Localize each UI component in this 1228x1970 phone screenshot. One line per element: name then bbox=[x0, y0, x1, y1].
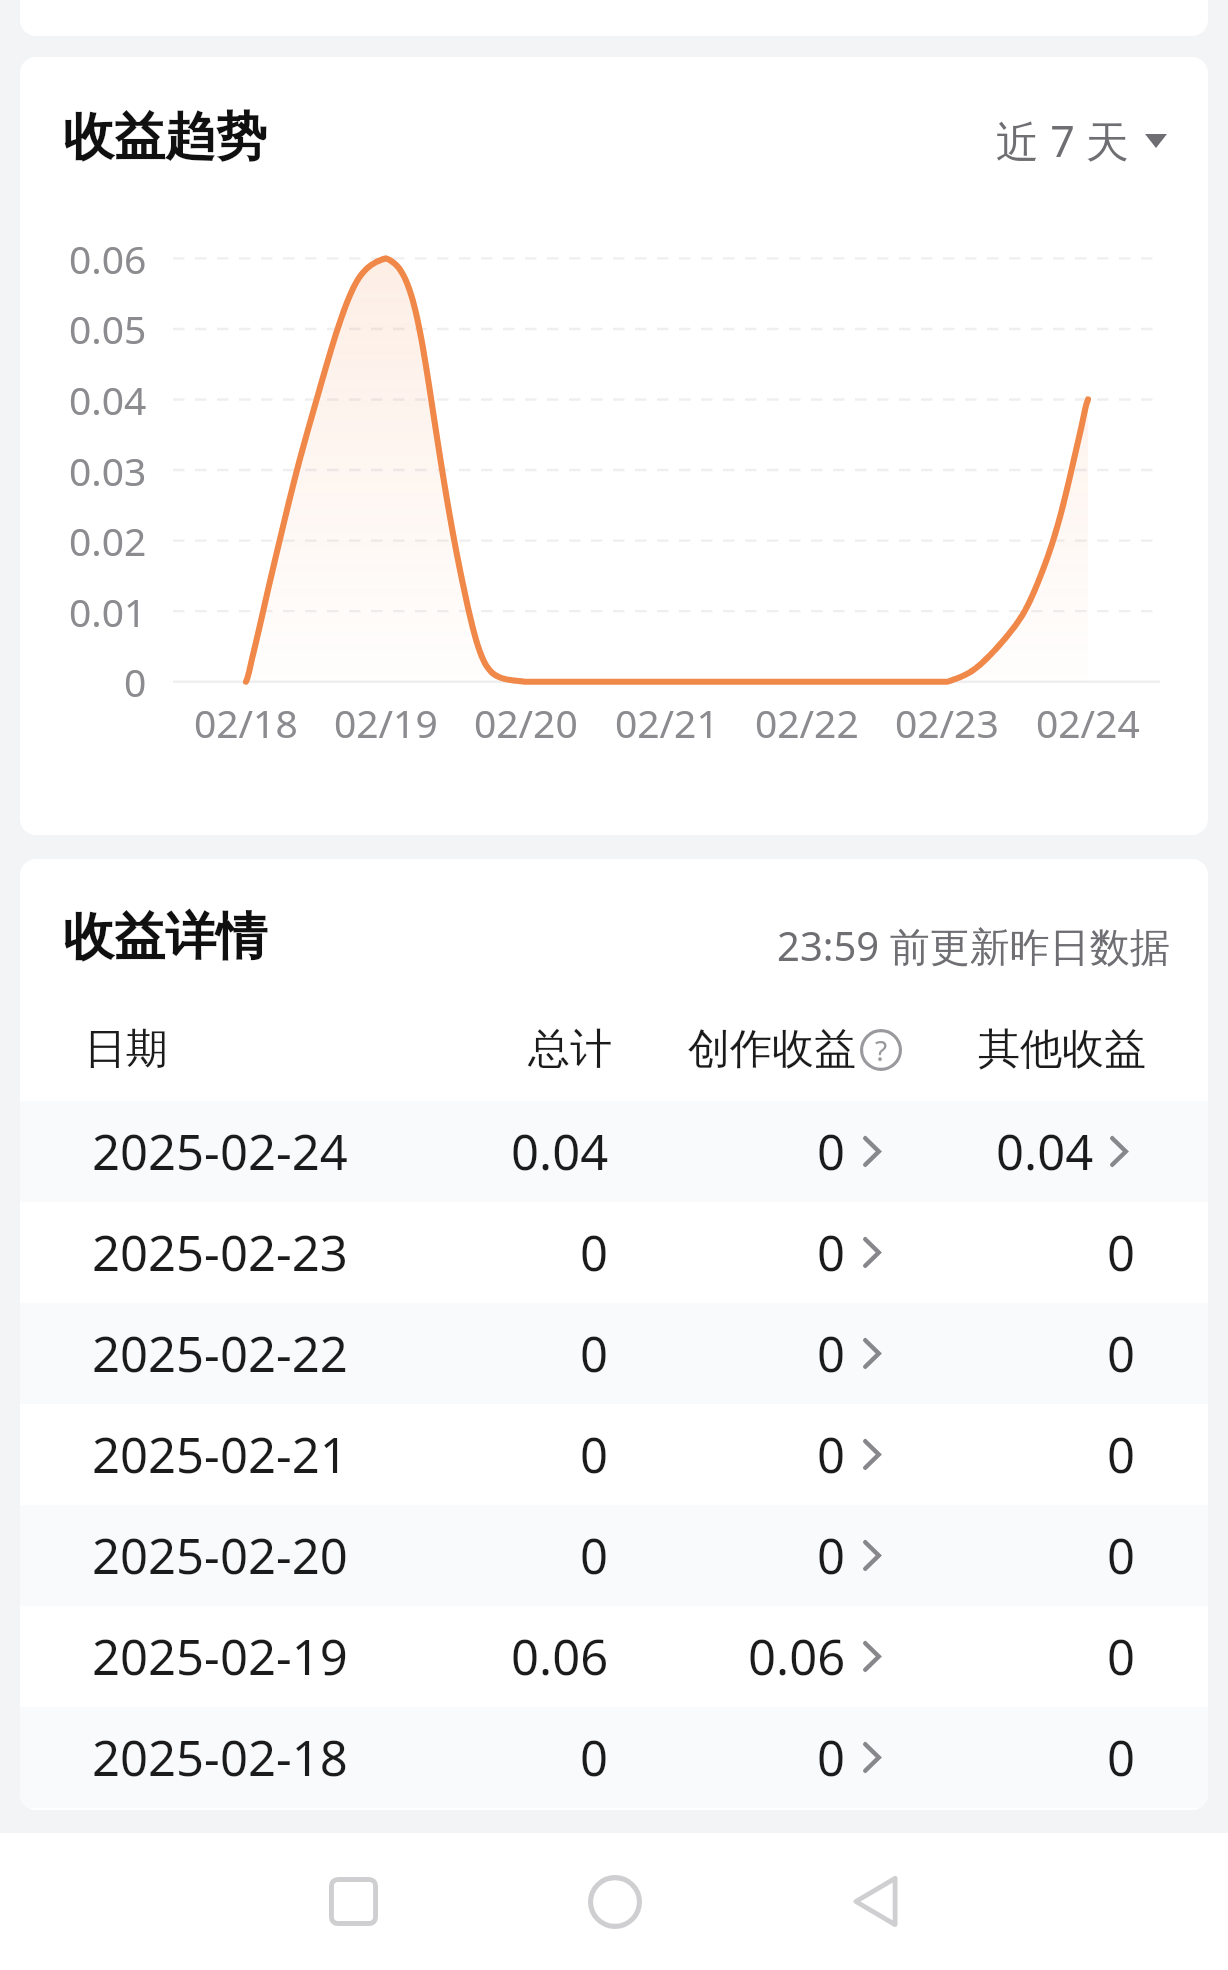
staticText: 2025-02-18 bbox=[92, 1724, 348, 1791]
staticText: 0.06 bbox=[511, 1623, 609, 1690]
staticText: 2025-02-22 bbox=[92, 1320, 348, 1387]
staticText: 0 bbox=[580, 1219, 609, 1286]
staticText: 0 bbox=[817, 1118, 846, 1185]
staticText: 总计 bbox=[528, 1023, 612, 1076]
staticText: 近 7 天 bbox=[996, 111, 1129, 170]
staticText: 0 bbox=[1107, 1522, 1136, 1589]
button[interactable]: 2025-02-22 bbox=[20, 1303, 1208, 1404]
staticText: 0 bbox=[1107, 1320, 1136, 1387]
staticText: 2025-02-23 bbox=[92, 1219, 348, 1286]
staticText: 2025-02-21 bbox=[92, 1421, 348, 1488]
button[interactable]: 2025-02-20 bbox=[20, 1505, 1208, 1606]
staticText: 0 bbox=[817, 1522, 846, 1589]
button[interactable]: 2025-02-23 bbox=[20, 1202, 1208, 1303]
staticText: 23:59 前更新昨日数据 bbox=[777, 918, 1170, 973]
staticText: 日期 bbox=[84, 1023, 168, 1076]
staticText: 0 bbox=[817, 1219, 846, 1286]
staticText: 0.04 bbox=[511, 1118, 609, 1185]
button[interactable]: 2025-02-19 bbox=[20, 1606, 1208, 1707]
button[interactable]: 近 7 天 bbox=[996, 103, 1167, 170]
button[interactable]: Home bbox=[549, 1833, 680, 1970]
staticText: 0 bbox=[817, 1320, 846, 1387]
staticText: 0 bbox=[817, 1724, 846, 1791]
staticText: 0 bbox=[580, 1320, 609, 1387]
button[interactable]: Back bbox=[809, 1833, 940, 1970]
button[interactable]: 2025-02-24 bbox=[20, 1101, 1208, 1202]
staticText: 2025-02-20 bbox=[92, 1522, 348, 1589]
staticText: 0.06 bbox=[748, 1623, 846, 1690]
staticText: 收益趋势 bbox=[63, 105, 267, 169]
button[interactable]: Recent apps bbox=[288, 1833, 419, 1970]
button[interactable]: 2025-02-18 bbox=[20, 1707, 1208, 1808]
staticText: 2025-02-24 bbox=[92, 1118, 348, 1185]
staticText: 0 bbox=[580, 1522, 609, 1589]
staticText: 2025-02-19 bbox=[92, 1623, 348, 1690]
staticText: 0 bbox=[580, 1421, 609, 1488]
staticText: 0 bbox=[817, 1421, 846, 1488]
staticText: 0 bbox=[1107, 1623, 1136, 1690]
staticText: ? bbox=[875, 1031, 888, 1069]
staticText: 0.04 bbox=[996, 1118, 1094, 1185]
staticText: 0 bbox=[1107, 1421, 1136, 1488]
staticText: 0 bbox=[580, 1724, 609, 1791]
staticText: 0 bbox=[1107, 1724, 1136, 1791]
button[interactable]: 2025-02-21 bbox=[20, 1404, 1208, 1505]
button[interactable]: Creation earnings help bbox=[688, 1023, 902, 1076]
staticText: 0 bbox=[1107, 1219, 1136, 1286]
staticText: 其他收益 bbox=[978, 1023, 1146, 1076]
staticText: 收益详情 bbox=[63, 905, 267, 969]
staticText: 创作收益 bbox=[688, 1023, 856, 1076]
